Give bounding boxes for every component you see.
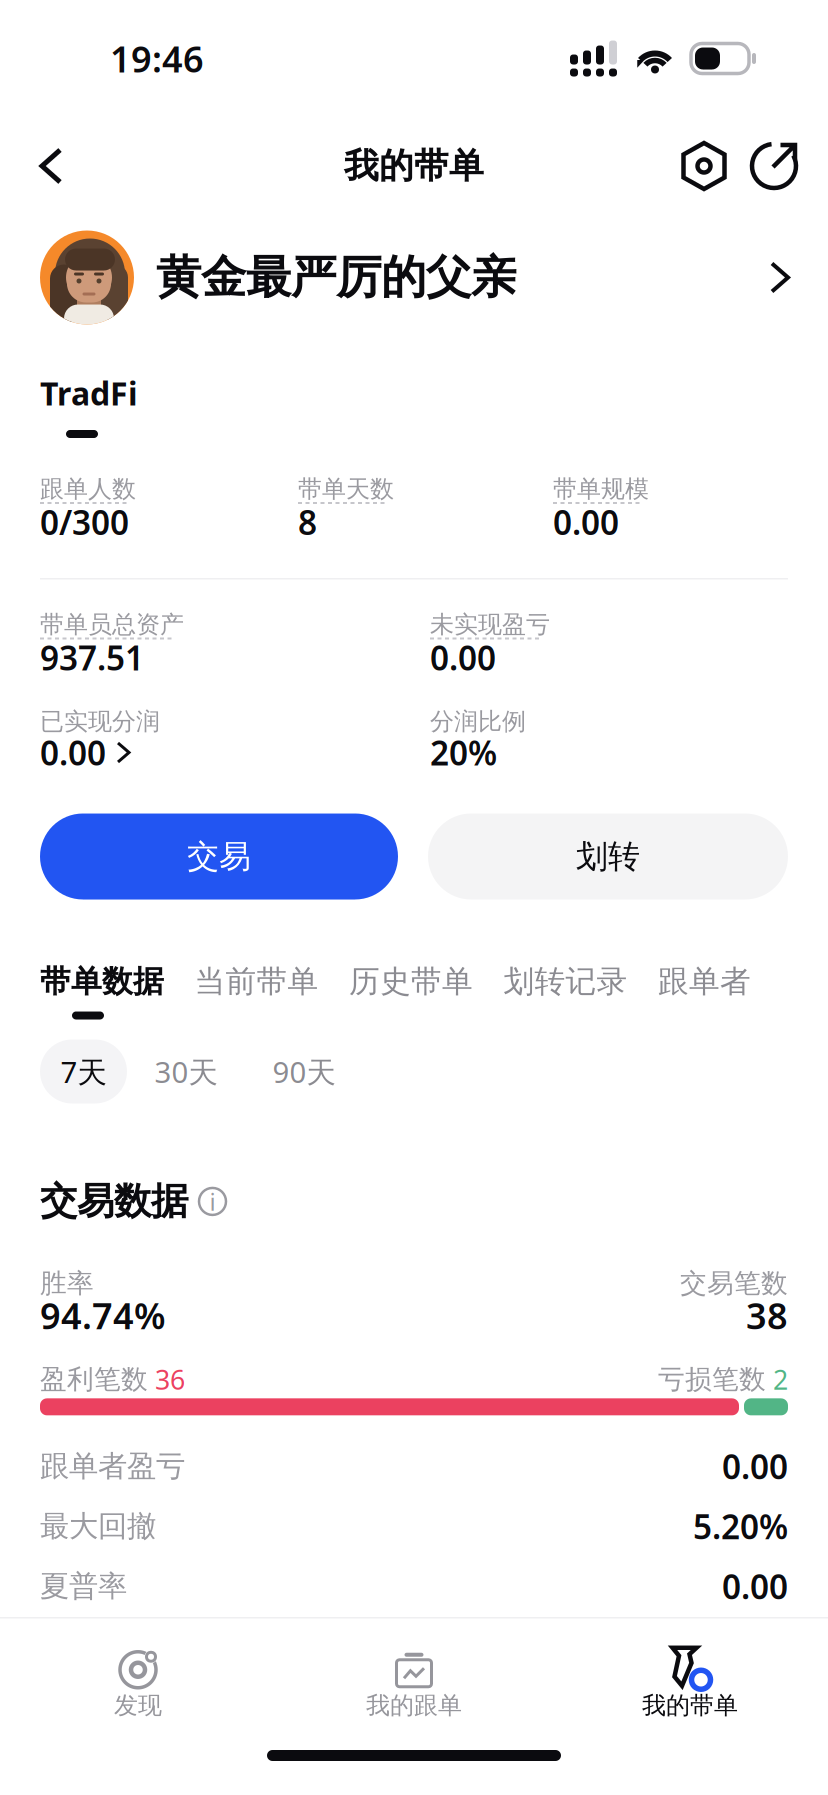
staticText: 当前带单 xyxy=(194,963,318,1000)
button[interactable]: 发现 xyxy=(0,1649,276,1720)
button[interactable]: 我的带单 xyxy=(552,1649,828,1720)
button[interactable]: 跟单者 xyxy=(658,963,751,1000)
staticText: 未实现盈亏 xyxy=(430,610,550,639)
staticText: 0.00 xyxy=(722,1564,788,1608)
button[interactable]: 当前带单 xyxy=(194,963,318,1000)
staticText: 0.00 xyxy=(722,1444,788,1488)
button[interactable]: 90天 xyxy=(245,1039,363,1103)
staticText: 带单规模 xyxy=(553,474,649,504)
button[interactable]: 历史带单 xyxy=(349,963,473,1000)
button[interactable]: Share xyxy=(730,138,802,194)
staticText: 带单天数 xyxy=(298,474,394,504)
staticText: 盈利笔数 xyxy=(40,1363,148,1396)
staticText: 最大回撤 xyxy=(40,1508,156,1544)
staticText: 亏损笔数 xyxy=(658,1363,766,1396)
staticText: 我的跟单 xyxy=(366,1691,462,1720)
staticText: 划转 xyxy=(576,837,640,876)
staticText: 我的带单 xyxy=(642,1691,738,1720)
staticText: 30天 xyxy=(154,1052,217,1091)
button[interactable]: 30天 xyxy=(127,1039,245,1103)
staticText: 黄金最严厉的父亲 xyxy=(156,250,516,305)
staticText: 90天 xyxy=(272,1052,335,1091)
staticText: 937.51 xyxy=(40,635,144,680)
button[interactable]: 划转 xyxy=(428,813,788,899)
button[interactable]: 带单数据 xyxy=(40,963,164,1000)
staticText: 我的带单 xyxy=(344,145,484,187)
staticText: 7天 xyxy=(60,1052,106,1091)
staticText: 0/300 xyxy=(40,500,129,544)
staticText: 5.20% xyxy=(693,1504,788,1548)
button[interactable]: 划转记录 xyxy=(503,963,627,1000)
button[interactable]: Back xyxy=(18,132,84,200)
staticText: TradFi xyxy=(40,372,138,414)
staticText: 0.00 xyxy=(553,500,619,544)
button[interactable]: 黄金最严厉的父亲 xyxy=(0,215,828,340)
staticText: 8 xyxy=(298,500,317,544)
staticText: 36 xyxy=(148,1362,185,1397)
staticText: 划转记录 xyxy=(503,963,627,1000)
button[interactable]: 交易 xyxy=(40,813,398,899)
staticText: 带单数据 xyxy=(40,963,164,1000)
staticText: 交易笔数 xyxy=(680,1267,788,1300)
staticText: 交易 xyxy=(187,837,251,876)
staticText: 夏普率 xyxy=(40,1568,127,1604)
staticText: 2 xyxy=(766,1362,788,1397)
staticText: 0.00 xyxy=(430,635,496,680)
button[interactable]: 我的跟单 xyxy=(276,1649,552,1720)
staticText: i xyxy=(209,1185,215,1217)
staticText: 38 xyxy=(746,1291,788,1339)
staticText: 0.00 xyxy=(40,730,106,775)
staticText: 历史带单 xyxy=(349,963,473,1000)
staticText: 跟单者盈亏 xyxy=(40,1448,185,1484)
staticText: 跟单者 xyxy=(658,963,751,1000)
staticText: 分润比例 xyxy=(430,707,526,736)
staticText: 发现 xyxy=(114,1691,162,1720)
button[interactable]: Settings xyxy=(678,138,730,194)
staticText: 胜率 xyxy=(40,1267,94,1300)
staticText: 交易数据 xyxy=(40,1178,188,1224)
staticText: 已实现分润 xyxy=(40,707,160,736)
staticText: 94.74% xyxy=(40,1291,166,1339)
button[interactable]: 7天 xyxy=(40,1039,127,1103)
staticText: 跟单人数 xyxy=(40,474,136,504)
staticText: 20% xyxy=(430,730,497,775)
staticText: 19:46 xyxy=(110,35,204,82)
staticText: 带单员总资产 xyxy=(40,610,184,639)
